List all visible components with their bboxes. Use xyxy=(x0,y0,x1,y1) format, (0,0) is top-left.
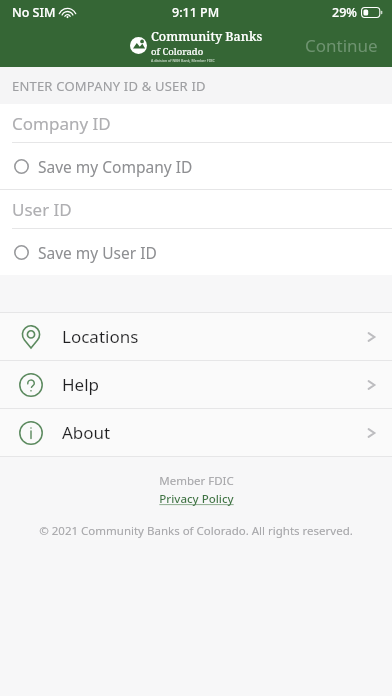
staticText: Continue xyxy=(305,34,378,57)
staticText: Company ID xyxy=(12,112,111,135)
staticText: Privacy Policy xyxy=(159,491,234,507)
button[interactable]: Help xyxy=(0,361,392,408)
button[interactable]: Continue xyxy=(291,28,392,63)
button[interactable]: Save my Company ID xyxy=(0,143,392,189)
staticText: About xyxy=(62,421,111,444)
staticText: No SIM xyxy=(12,4,56,21)
staticText: User ID xyxy=(12,198,72,221)
staticText: Help xyxy=(62,373,100,396)
staticText: of Colorado xyxy=(151,45,204,58)
staticText: Locations xyxy=(62,325,139,348)
button[interactable]: About xyxy=(0,409,392,456)
button[interactable]: Save my User ID xyxy=(0,229,392,275)
staticText: Community Banks xyxy=(151,28,263,45)
staticText: Member FDIC xyxy=(159,473,234,489)
staticText: A division of NBH Bank, Member FDIC xyxy=(151,58,215,63)
button[interactable]: User ID xyxy=(0,190,392,228)
staticText: Save my Company ID xyxy=(38,156,193,177)
staticText: Save my User ID xyxy=(38,242,157,263)
button[interactable]: Privacy Policy xyxy=(159,491,234,507)
staticText: 29% xyxy=(332,4,357,21)
button[interactable]: Company ID xyxy=(0,104,392,142)
staticText: ENTER COMPANY ID & USER ID xyxy=(12,77,206,95)
staticText: 9:11 PM xyxy=(172,4,220,21)
staticText: © 2021 Community Banks of Colorado. All … xyxy=(39,523,353,539)
button[interactable]: Locations xyxy=(0,313,392,360)
